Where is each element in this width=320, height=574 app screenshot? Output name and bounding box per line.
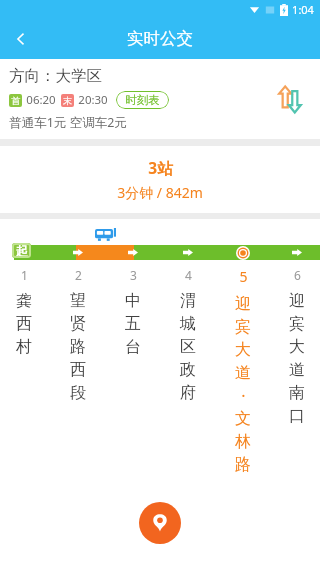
staticText: ·	[241, 385, 246, 407]
staticText: 道	[235, 363, 251, 383]
staticText: 6	[294, 267, 301, 283]
staticText: 中	[125, 291, 141, 311]
staticText: 村	[16, 337, 32, 357]
staticText: 城	[180, 314, 196, 334]
staticText: 大	[289, 337, 305, 357]
staticText: 路	[70, 337, 86, 357]
staticText: 1	[21, 267, 28, 283]
staticText: 道	[289, 360, 305, 380]
button[interactable]: Back	[0, 18, 41, 59]
staticText: 文	[235, 409, 251, 429]
staticText: 3	[130, 267, 137, 283]
staticText: 台	[125, 337, 141, 357]
staticText: 实时公交	[127, 28, 193, 49]
staticText: 迎	[289, 291, 305, 311]
staticText: 4	[185, 267, 192, 283]
staticText: 大	[235, 340, 251, 360]
staticText: 政	[180, 360, 196, 380]
staticText: 贤	[70, 314, 86, 334]
button[interactable]: Switch direction	[272, 81, 308, 117]
button[interactable]: 5	[225, 267, 261, 476]
staticText: 望	[70, 291, 86, 311]
button[interactable]: 时刻表	[116, 91, 169, 109]
staticText: 路	[235, 455, 251, 475]
staticText: 方向：大学区	[9, 66, 102, 86]
staticText: 南	[289, 383, 305, 403]
staticText: 迎	[235, 294, 251, 314]
staticText: 1:04	[292, 2, 314, 17]
staticText: 首	[11, 95, 20, 106]
staticText: 末	[63, 95, 72, 106]
staticText: 渭	[180, 291, 196, 311]
button[interactable]: 2	[60, 267, 96, 404]
staticText: 西	[16, 314, 32, 334]
staticText: 普通车1元 空调车2元	[9, 114, 127, 131]
staticText: 龚	[16, 291, 32, 311]
button[interactable]: 3	[115, 267, 151, 358]
staticText: 3站	[148, 157, 173, 178]
staticText: 口	[289, 406, 305, 426]
staticText: 府	[180, 383, 196, 403]
staticText: 区	[180, 337, 196, 357]
staticText: 20:30	[78, 92, 108, 108]
staticText: 5	[239, 267, 248, 286]
staticText: 2	[75, 267, 82, 283]
staticText: 宾	[235, 317, 251, 337]
staticText: 宾	[289, 314, 305, 334]
button[interactable]: 4	[170, 267, 206, 404]
staticText: 3分钟 / 842m	[117, 183, 203, 202]
staticText: 起	[16, 243, 28, 258]
staticText: 06:20	[26, 92, 56, 108]
staticText: 西	[70, 360, 86, 380]
staticText: 五	[125, 314, 141, 334]
button[interactable]: 1	[6, 267, 42, 358]
button[interactable]: 6	[279, 267, 315, 427]
staticText: 段	[70, 383, 86, 403]
button[interactable]: Locate on map	[139, 502, 181, 544]
staticText: 时刻表	[125, 93, 160, 107]
staticText: 林	[235, 432, 251, 452]
